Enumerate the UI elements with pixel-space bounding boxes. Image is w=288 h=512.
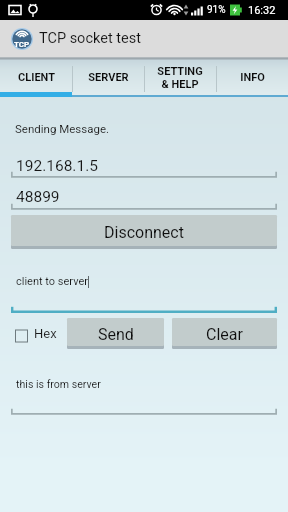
button[interactable]: CLIENT (0, 60, 72, 97)
staticText: Hex (34, 326, 57, 339)
staticText: INFO (240, 71, 265, 84)
button[interactable]: Clear (172, 318, 277, 348)
button[interactable]: Disconnect (11, 215, 277, 248)
staticText: Sending Message. (15, 122, 110, 135)
button[interactable]: SETTING & HELP (144, 60, 216, 97)
button[interactable]: INFO (216, 60, 288, 97)
staticText: TCP socket test (39, 30, 141, 47)
button[interactable]: Hex (15, 329, 57, 342)
staticText: SETTING & HELP (157, 65, 203, 91)
staticText: 192.168.1.5 (16, 157, 98, 175)
staticText: Clear (206, 325, 243, 344)
staticText: client to server (16, 275, 88, 288)
staticText: TCP (14, 40, 30, 49)
staticText: Disconnect (104, 223, 184, 242)
staticText: SERVER (88, 71, 129, 84)
button[interactable]: Send (67, 318, 164, 348)
staticText: 16:32 (248, 4, 276, 17)
staticText: 48899 (16, 188, 60, 206)
staticText: this is from server (16, 378, 101, 390)
staticText: Send (98, 325, 134, 344)
button[interactable]: SERVER (72, 60, 144, 97)
staticText: 91% (207, 4, 226, 16)
staticText: CLIENT (18, 71, 55, 84)
